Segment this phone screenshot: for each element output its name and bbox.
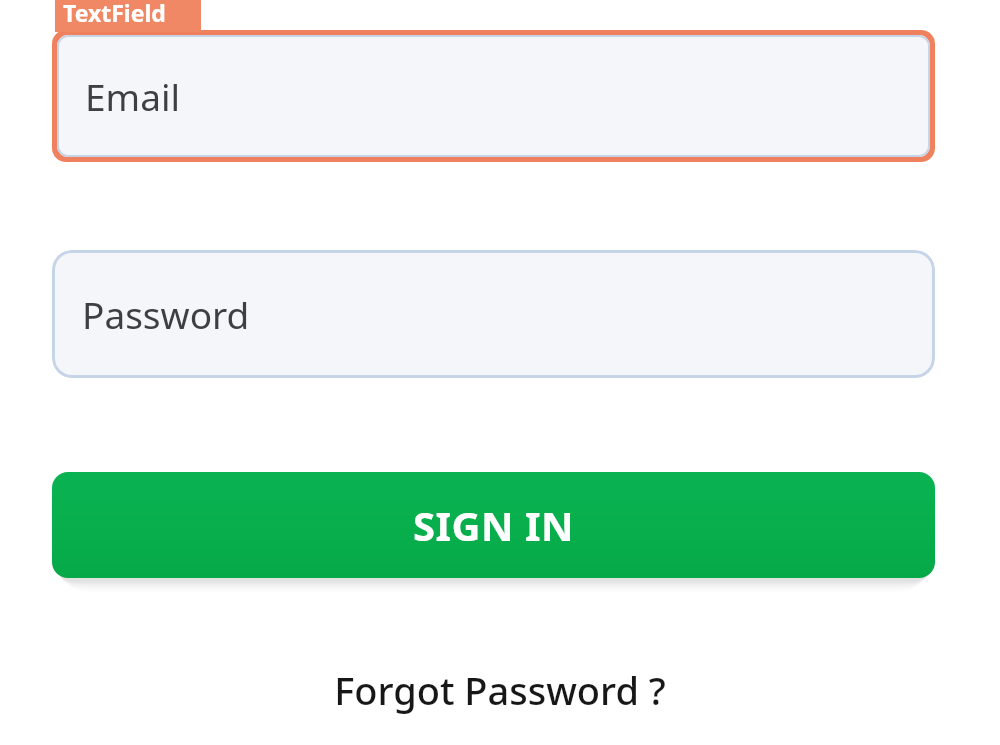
staticText: SIGN IN [413,498,575,552]
button[interactable]: SIGN IN [52,472,935,578]
staticText: Email [85,71,181,121]
button[interactable]: Forgot Password ? [0,655,1000,725]
staticText: Forgot Password ? [334,664,666,716]
button[interactable]: Email [52,30,935,162]
button[interactable]: Password [52,250,935,378]
staticText: Password [82,289,250,339]
staticText: TextField [63,0,166,28]
